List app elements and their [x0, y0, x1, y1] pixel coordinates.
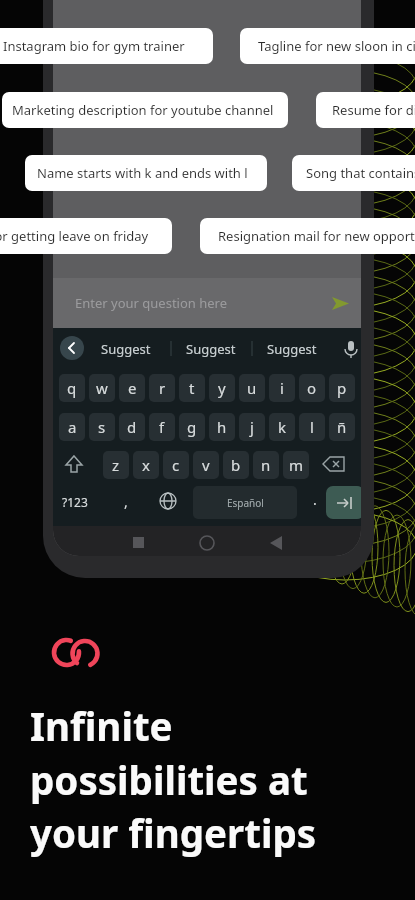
- staticText: u: [247, 378, 257, 398]
- staticText: Resignation mail for new opportun: [218, 227, 415, 245]
- button[interactable]: f: [149, 413, 175, 441]
- staticText: Español: [227, 496, 264, 510]
- button[interactable]: q: [59, 374, 85, 402]
- staticText: w: [96, 378, 108, 398]
- button[interactable]: [193, 530, 223, 554]
- button[interactable]: Marketing description for youtube channe…: [2, 92, 288, 128]
- button[interactable]: t: [179, 374, 205, 402]
- button[interactable]: o: [299, 374, 325, 402]
- button[interactable]: w: [89, 374, 115, 402]
- staticText: a: [68, 417, 77, 437]
- staticText: e: [128, 378, 137, 398]
- button[interactable]: Tagline for new sloon in cit: [240, 28, 415, 64]
- button[interactable]: Enter your question here: [53, 278, 361, 328]
- button[interactable]: c: [163, 451, 189, 479]
- staticText: f: [159, 417, 165, 437]
- button[interactable]: d: [119, 413, 145, 441]
- staticText: b: [231, 455, 241, 475]
- button[interactable]: ,: [124, 492, 128, 511]
- button[interactable]: i: [269, 374, 295, 402]
- button[interactable]: g: [179, 413, 205, 441]
- button[interactable]: [326, 486, 361, 519]
- staticText: c: [172, 455, 180, 475]
- button[interactable]: s: [89, 413, 115, 441]
- staticText: k: [278, 417, 287, 437]
- staticText: p: [337, 378, 347, 398]
- button[interactable]: Suggest: [101, 340, 151, 358]
- button[interactable]: r: [149, 374, 175, 402]
- button[interactable]: Instagram bio for gym trainer: [0, 28, 213, 64]
- button[interactable]: y: [209, 374, 235, 402]
- button[interactable]: z: [103, 451, 129, 479]
- button[interactable]: ñ: [329, 413, 355, 441]
- button[interactable]: ?123: [62, 494, 88, 510]
- button[interactable]: e: [119, 374, 145, 402]
- button[interactable]: [123, 530, 153, 554]
- staticText: g: [187, 417, 197, 437]
- button[interactable]: .: [313, 490, 317, 509]
- staticText: Instagram bio for gym trainer: [3, 37, 185, 55]
- button[interactable]: v: [193, 451, 219, 479]
- button[interactable]: l: [299, 413, 325, 441]
- button[interactable]: Suggest: [186, 340, 236, 358]
- button[interactable]: Name starts with k and ends with l: [25, 155, 267, 191]
- staticText: ñ: [337, 417, 347, 437]
- staticText: h: [217, 417, 227, 437]
- staticText: y: [218, 378, 226, 398]
- staticText: t: [189, 378, 195, 398]
- staticText: d: [127, 417, 137, 437]
- button[interactable]: Español: [193, 486, 297, 519]
- staticText: l: [310, 417, 314, 437]
- staticText: Resume for digi: [332, 101, 415, 119]
- staticText: Enter your question here: [75, 294, 228, 312]
- staticText: q: [67, 378, 77, 398]
- staticText: Marketing description for youtube channe…: [12, 101, 274, 119]
- staticText: j: [250, 417, 254, 437]
- staticText: n: [261, 455, 271, 475]
- button[interactable]: Resignation mail for new opportun: [200, 218, 415, 254]
- button[interactable]: [159, 492, 177, 510]
- staticText: v: [202, 455, 210, 475]
- button[interactable]: k: [269, 413, 295, 441]
- staticText: x: [142, 455, 150, 475]
- button[interactable]: p: [329, 374, 355, 402]
- staticText: m: [289, 455, 304, 475]
- button[interactable]: m: [283, 451, 309, 479]
- button[interactable]: [60, 336, 84, 360]
- button[interactable]: u: [239, 374, 265, 402]
- button[interactable]: [323, 457, 345, 479]
- button[interactable]: [263, 530, 293, 554]
- button[interactable]: Suggest: [267, 340, 317, 358]
- staticText: z: [112, 455, 120, 475]
- staticText: o: [307, 378, 317, 398]
- staticText: Tagline for new sloon in cit: [258, 37, 415, 55]
- button[interactable]: a: [59, 413, 85, 441]
- button[interactable]: Resume for digi: [316, 92, 415, 128]
- button[interactable]: h: [209, 413, 235, 441]
- button[interactable]: Song that contains: [292, 155, 415, 191]
- button[interactable]: [65, 456, 83, 474]
- staticText: Infinite possibilities at your fingertip…: [30, 700, 317, 859]
- button[interactable]: for getting leave on friday: [0, 218, 172, 254]
- button[interactable]: j: [239, 413, 265, 441]
- staticText: Name starts with k and ends with l: [37, 164, 248, 182]
- staticText: Song that contains: [306, 164, 415, 182]
- staticText: s: [98, 417, 106, 437]
- button[interactable]: b: [223, 451, 249, 479]
- staticText: for getting leave on friday: [0, 227, 149, 245]
- staticText: r: [159, 378, 166, 398]
- staticText: i: [280, 378, 284, 398]
- button[interactable]: x: [133, 451, 159, 479]
- button[interactable]: n: [253, 451, 279, 479]
